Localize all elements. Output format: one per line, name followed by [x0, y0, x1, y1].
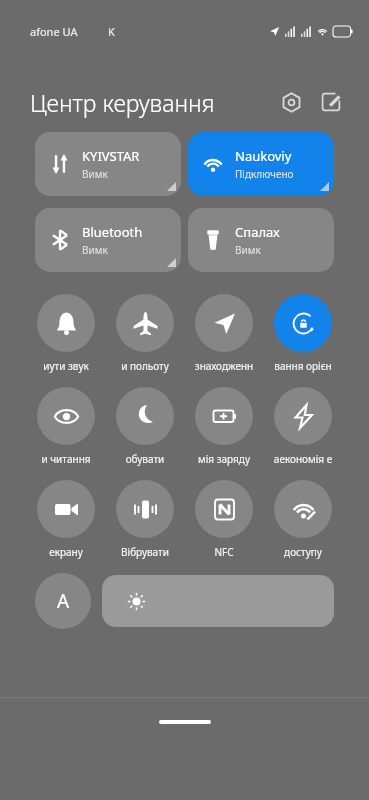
- staticText: доступу: [267, 545, 339, 559]
- staticText: иути звук: [30, 359, 102, 373]
- staticText: Вимк: [82, 243, 108, 257]
- staticText: KYIVSTAR: [82, 147, 140, 165]
- button[interactable]: Edit: [315, 86, 347, 118]
- button[interactable]: доступу: [267, 480, 339, 559]
- staticText: вання орієн: [267, 359, 339, 373]
- button[interactable]: Brightness: [102, 575, 334, 627]
- staticText: обувати: [109, 452, 181, 466]
- button[interactable]: Settings: [275, 86, 307, 118]
- staticText: Підключено: [235, 167, 294, 181]
- staticText: afone UA: [30, 24, 78, 39]
- staticText: Bluetooth: [82, 223, 143, 241]
- button[interactable]: екрану: [30, 480, 102, 559]
- staticText: Центр керування: [30, 87, 215, 118]
- staticText: знаходженн: [188, 359, 260, 373]
- button[interactable]: иути звук: [30, 294, 102, 373]
- button[interactable]: вання орієн: [267, 294, 339, 373]
- staticText: Вимк: [235, 243, 261, 257]
- staticText: и читання: [30, 452, 102, 466]
- button[interactable]: аекономія е: [267, 387, 339, 466]
- staticText: екрану: [30, 545, 102, 559]
- button[interactable]: Bluetooth: [35, 208, 181, 272]
- staticText: K: [108, 24, 115, 39]
- button[interactable]: A: [35, 573, 91, 629]
- button[interactable]: Вібрувати: [109, 480, 181, 559]
- button[interactable]: и читання: [30, 387, 102, 466]
- button[interactable]: Naukoviy: [188, 132, 334, 196]
- staticText: Вібрувати: [109, 545, 181, 559]
- button[interactable]: знаходженн: [188, 294, 260, 373]
- staticText: аекономія е: [267, 452, 339, 466]
- button[interactable]: Спалах: [188, 208, 334, 272]
- staticText: A: [57, 588, 70, 614]
- button[interactable]: NFC: [188, 480, 260, 559]
- staticText: Naukoviy: [235, 147, 292, 165]
- staticText: и польоту: [109, 359, 181, 373]
- staticText: Спалах: [235, 223, 280, 241]
- button[interactable]: и польоту: [109, 294, 181, 373]
- staticText: NFC: [188, 545, 260, 559]
- staticText: Вимк: [82, 167, 108, 181]
- button[interactable]: обувати: [109, 387, 181, 466]
- staticText: мія заряду: [188, 452, 260, 466]
- button[interactable]: мія заряду: [188, 387, 260, 466]
- button[interactable]: KYIVSTAR: [35, 132, 181, 196]
